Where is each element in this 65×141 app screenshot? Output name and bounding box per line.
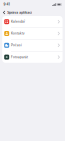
button[interactable]: Kalendář <box>2 16 63 27</box>
button[interactable]: Fotoaparát <box>2 51 63 63</box>
button[interactable]: Správa aplikací <box>0 9 34 16</box>
staticText: Počasí <box>11 43 22 47</box>
button[interactable]: Počasí <box>2 40 63 51</box>
staticText: Kontakty <box>11 32 25 35</box>
staticText: 9:41 <box>4 3 10 6</box>
button[interactable]: Kontakty <box>2 28 63 39</box>
staticText: Správa aplikací <box>7 11 32 14</box>
staticText: Fotoaparát <box>11 55 28 59</box>
staticText: Kalendář <box>11 20 25 23</box>
